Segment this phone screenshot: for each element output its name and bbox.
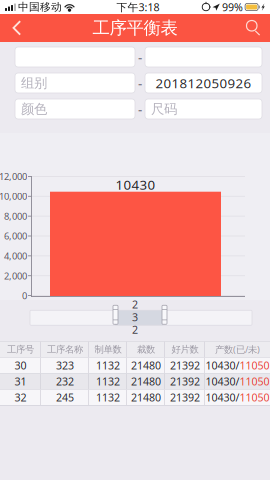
button[interactable]: [15, 47, 135, 67]
staticText: 尺码: [151, 101, 177, 117]
staticText: 10430: [115, 176, 155, 193]
staticText: 3: [132, 310, 138, 324]
staticText: 组别: [21, 75, 47, 91]
staticText: 裁数: [137, 344, 155, 355]
button[interactable]: Range end: [162, 305, 167, 324]
staticText: 中国移动: [18, 0, 62, 13]
staticText: 232: [56, 374, 74, 388]
staticText: 10430/: [205, 374, 239, 388]
button[interactable]: 尺码: [145, 99, 262, 119]
staticText: 下午3:18: [116, 0, 159, 14]
staticText: 2,000: [4, 270, 27, 282]
staticText: 2: [132, 297, 138, 311]
staticText: 99%: [222, 0, 243, 14]
staticText: 10,000: [0, 190, 27, 202]
staticText: 21392: [170, 390, 200, 404]
staticText: 11050: [239, 358, 269, 372]
staticText: 制单数: [94, 344, 121, 355]
staticText: -: [138, 100, 142, 118]
staticText: 21392: [170, 358, 200, 372]
staticText: 产数(已/未): [215, 343, 260, 356]
staticText: 6,000: [4, 230, 27, 242]
staticText: 323: [56, 358, 74, 372]
staticText: 1132: [96, 390, 120, 404]
staticText: 工序名称: [47, 344, 83, 355]
button[interactable]: Back: [0, 14, 32, 42]
staticText: 201812050926: [155, 74, 251, 92]
staticText: 4,000: [4, 250, 27, 262]
staticText: 0: [22, 289, 27, 302]
staticText: -: [138, 48, 142, 66]
button[interactable]: 组别: [15, 73, 135, 93]
staticText: 31: [14, 374, 26, 388]
button[interactable]: Search: [238, 14, 270, 42]
staticText: 12,000: [0, 170, 27, 183]
staticText: 32: [14, 390, 26, 404]
button[interactable]: 颜色: [15, 99, 135, 119]
staticText: 21480: [131, 358, 161, 372]
staticText: 11050: [239, 390, 269, 404]
staticText: 2: [132, 323, 138, 337]
button[interactable]: [145, 47, 262, 67]
button[interactable]: Range start: [113, 305, 118, 324]
staticText: 30: [14, 358, 26, 372]
staticText: 颜色: [21, 101, 47, 117]
staticText: 工序号: [7, 344, 34, 355]
staticText: -: [138, 74, 142, 92]
staticText: 10430/: [205, 390, 239, 404]
button[interactable]: 201812050926: [145, 73, 262, 93]
staticText: 1132: [96, 374, 120, 388]
staticText: 21480: [131, 374, 161, 388]
staticText: 好片数: [171, 344, 198, 355]
staticText: 21392: [170, 374, 200, 388]
staticText: 工序平衡表: [92, 17, 177, 39]
staticText: 245: [56, 390, 74, 404]
staticText: 10430/: [205, 358, 239, 372]
staticText: 1132: [96, 358, 120, 372]
staticText: 8,000: [4, 210, 27, 222]
staticText: 11050: [239, 374, 269, 388]
staticText: 21480: [131, 390, 161, 404]
